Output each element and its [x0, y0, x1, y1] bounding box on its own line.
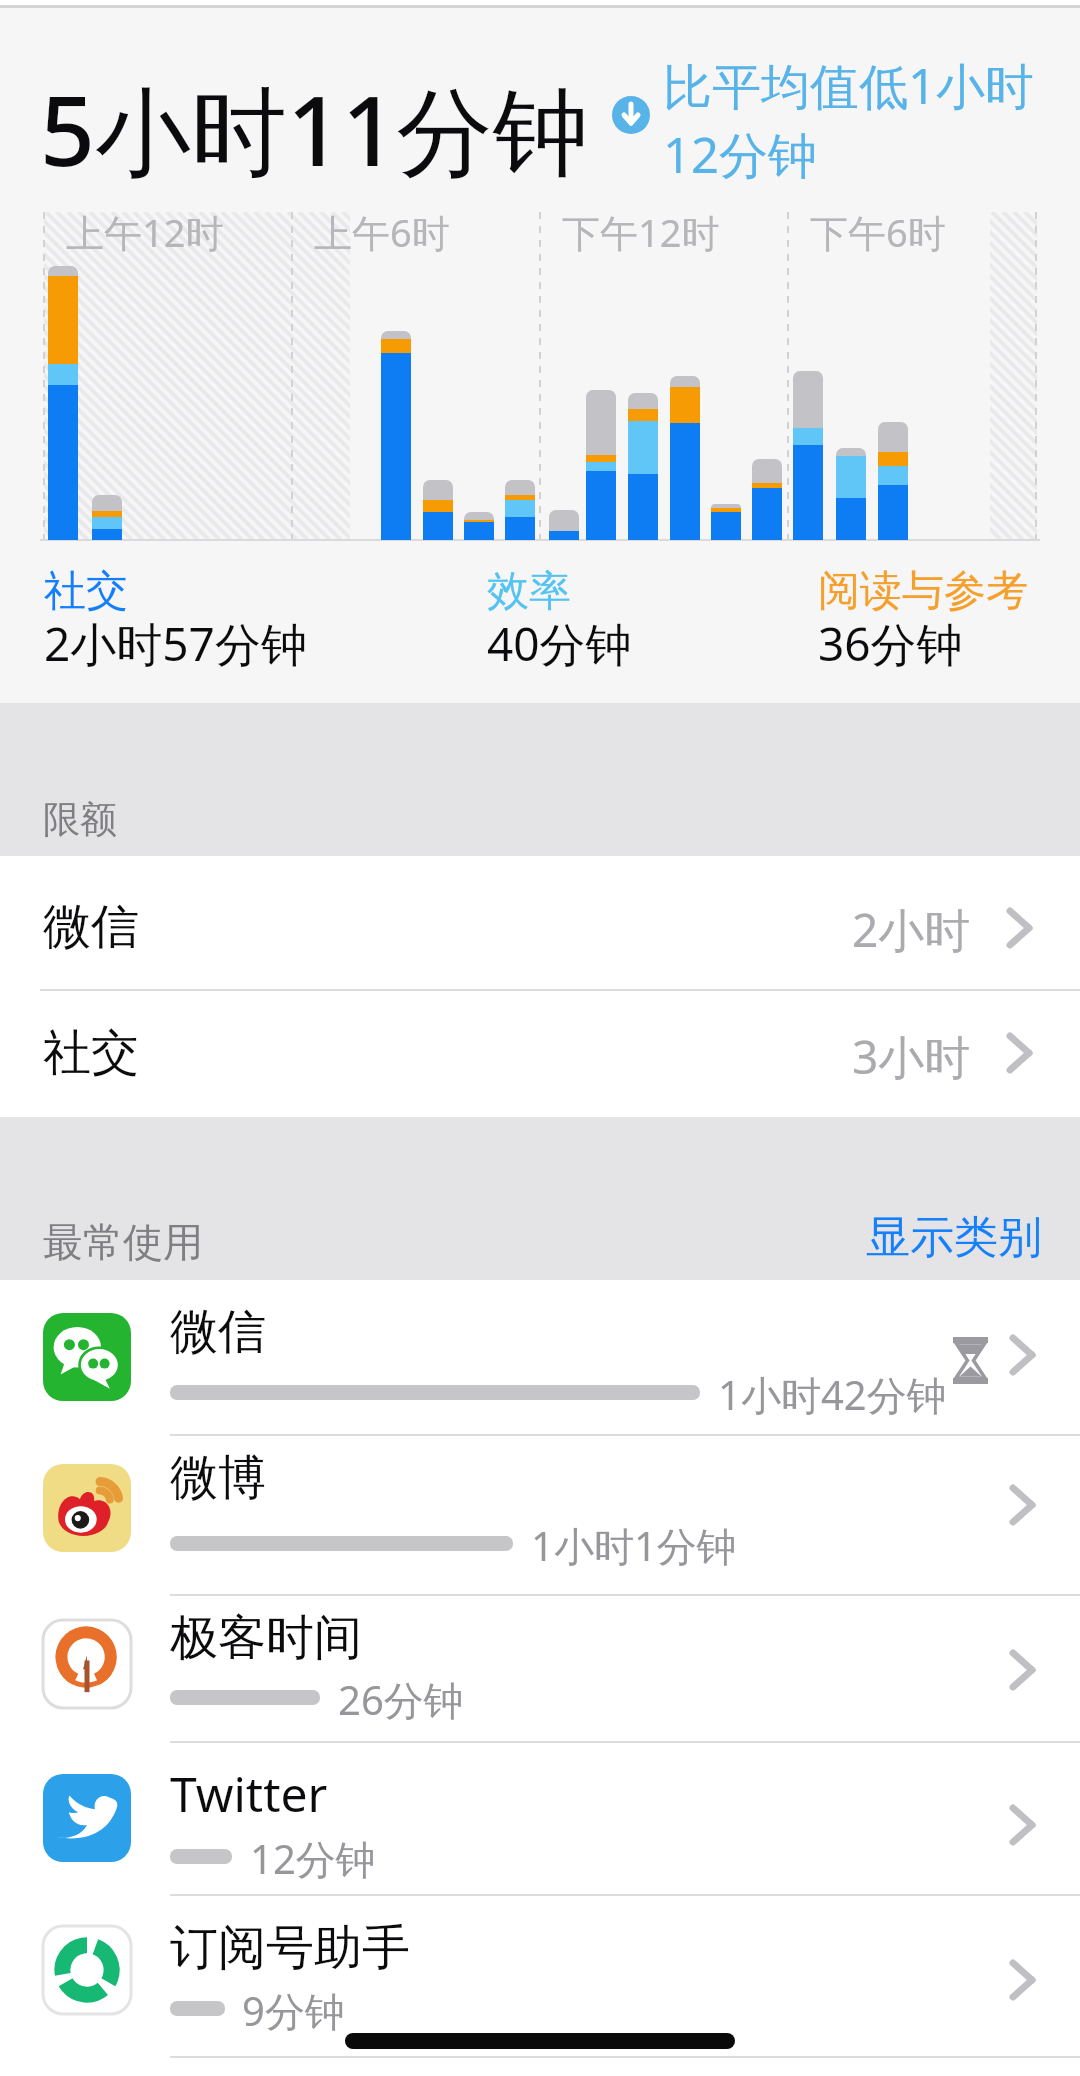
staticText: 12分钟 — [663, 121, 818, 188]
staticText: 2小时 — [852, 898, 971, 961]
staticText: 极客时间 — [170, 1608, 362, 1668]
staticText: 1小时42分钟 — [718, 1367, 947, 1422]
staticText: 限额 — [43, 796, 117, 843]
staticText: 下午6时 — [810, 206, 946, 258]
button[interactable]: 微信 — [0, 856, 1080, 990]
staticText: 下午12时 — [562, 206, 720, 258]
staticText: 微博 — [170, 1448, 266, 1508]
staticText: 社交 — [44, 565, 128, 618]
staticText: 效率 — [487, 565, 571, 618]
staticText: 比平均值低1小时 — [663, 52, 1035, 119]
staticText: 上午6时 — [314, 206, 450, 258]
staticText: 阅读与参考 — [818, 565, 1028, 618]
staticText: 微信 — [170, 1302, 266, 1362]
button[interactable]: 微信 — [0, 1280, 1080, 1435]
button[interactable]: 订阅号助手 — [0, 1896, 1080, 2056]
staticText: 订阅号助手 — [170, 1918, 410, 1978]
button[interactable]: 社交 — [0, 991, 1080, 1117]
staticText: 36分钟 — [818, 612, 963, 675]
staticText: 5小时11分钟 — [40, 63, 589, 194]
button[interactable]: 显示类别 — [0, 0, 176, 55]
staticText: 26分钟 — [338, 1672, 464, 1727]
staticText: 上午12时 — [66, 206, 224, 258]
button[interactable]: 微博 — [0, 1436, 1080, 1594]
staticText: 微信 — [43, 897, 139, 957]
button[interactable]: 极客时间 — [0, 1596, 1080, 1741]
staticText: 最常使用 — [43, 1217, 203, 1267]
staticText: Twitter — [170, 1761, 328, 1826]
staticText: 40分钟 — [487, 612, 632, 675]
staticText: 9分钟 — [242, 1983, 345, 2038]
staticText: 2小时57分钟 — [44, 612, 307, 675]
staticText: 3小时 — [852, 1025, 971, 1088]
staticText: 社交 — [43, 1023, 139, 1083]
button[interactable]: Twitter — [0, 1743, 1080, 1894]
staticText: 12分钟 — [250, 1831, 376, 1886]
staticText: 1小时1分钟 — [531, 1518, 737, 1573]
